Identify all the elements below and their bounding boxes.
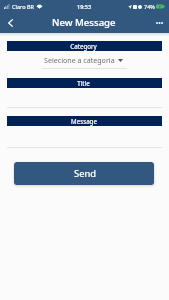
staticText: 19:53: [77, 3, 92, 10]
staticText: Send: [74, 167, 97, 180]
staticText: Title: [77, 79, 90, 87]
button[interactable]: Back: [0, 13, 21, 33]
button[interactable]: Send: [14, 162, 154, 185]
staticText: Message: [71, 117, 97, 125]
staticText: Selecione a categoria: [44, 55, 115, 65]
button[interactable]: Selecione a categoria: [0, 53, 169, 66]
staticText: New Message: [52, 16, 116, 29]
staticText: 74%: [144, 3, 155, 10]
staticText: Claro BR: [12, 3, 34, 10]
staticText: Category: [70, 42, 97, 50]
button[interactable]: More options: [149, 13, 169, 33]
